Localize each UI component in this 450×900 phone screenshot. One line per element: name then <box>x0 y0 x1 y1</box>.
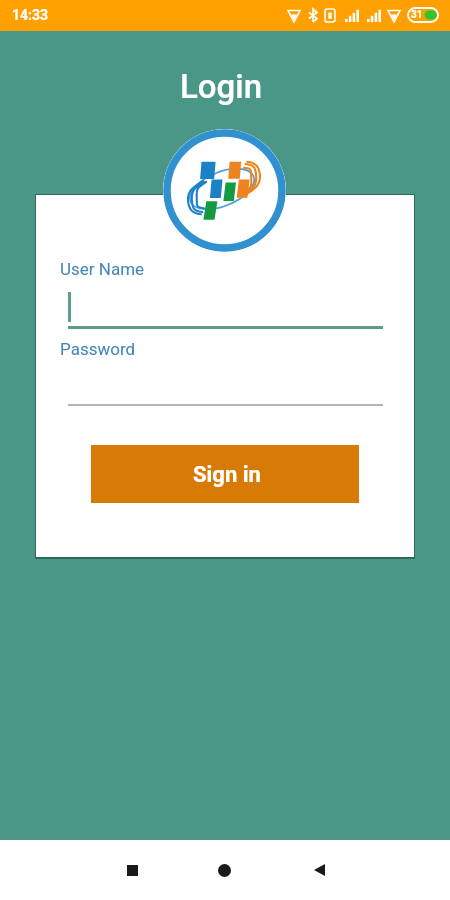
staticText: 14:33 <box>12 7 49 23</box>
staticText: 31 <box>411 9 423 21</box>
button[interactable]: Recent apps <box>108 846 156 894</box>
button[interactable]: Sign in <box>91 445 359 503</box>
button[interactable]: Home <box>200 846 248 894</box>
button[interactable]: Password <box>60 333 390 408</box>
button[interactable]: User Name <box>60 253 390 329</box>
staticText: Login <box>0 67 446 106</box>
staticText: Password <box>60 339 136 359</box>
staticText: Sign in <box>193 462 261 488</box>
button[interactable]: Back <box>295 846 343 894</box>
staticText: User Name <box>60 259 145 279</box>
